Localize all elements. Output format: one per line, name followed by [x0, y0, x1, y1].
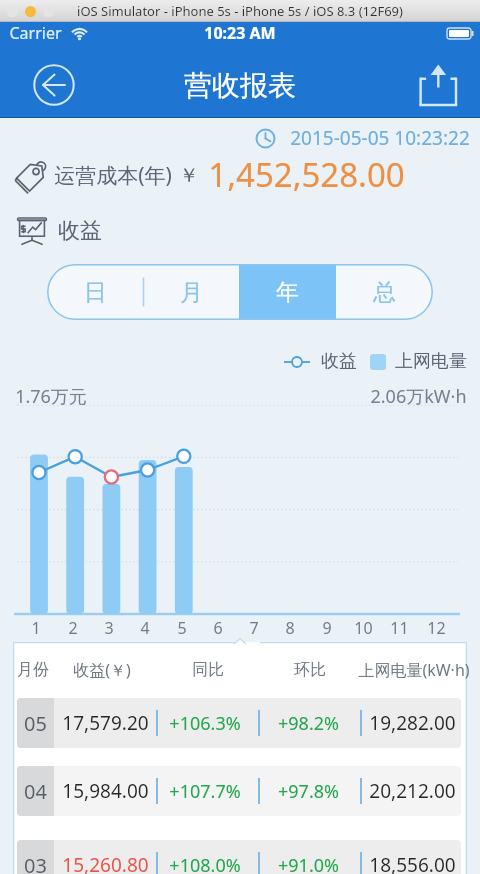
staticText: 3	[104, 617, 114, 637]
staticText: 10	[354, 617, 373, 637]
button[interactable]: Share	[414, 60, 462, 108]
staticText: 19,282.00	[369, 710, 456, 736]
staticText: 18,556.00	[369, 852, 456, 874]
staticText: 2	[68, 617, 78, 637]
staticText: 营收报表	[184, 68, 296, 103]
staticText: 日	[84, 278, 107, 307]
staticText: 15,260.80	[62, 852, 149, 874]
staticText: Carrier	[9, 22, 62, 44]
staticText: 环比	[294, 660, 326, 680]
staticText: 2.06万kW·h	[370, 384, 467, 409]
button[interactable]: 04	[17, 766, 461, 816]
staticText: +97.8%	[278, 779, 339, 804]
button[interactable]: 日	[47, 264, 143, 320]
staticText: 5	[177, 617, 187, 637]
staticText: 6	[213, 617, 223, 637]
staticText: 月	[180, 278, 203, 307]
staticText: 1.76万元	[15, 384, 87, 409]
staticText: 17,579.20	[62, 710, 149, 736]
staticText: 05	[24, 710, 47, 737]
staticText: 7	[249, 617, 259, 637]
staticText: +108.0%	[169, 853, 241, 874]
staticText: 运营成本(年)	[54, 161, 172, 190]
button[interactable]: Back	[30, 61, 78, 109]
staticText: 同比	[192, 660, 224, 680]
staticText: 上网电量(kW·h)	[358, 659, 470, 681]
button[interactable]: 05	[17, 698, 461, 748]
staticText: 04	[24, 778, 47, 805]
staticText: 收益	[58, 217, 102, 245]
staticText: 4	[140, 617, 150, 637]
staticText: 03	[24, 852, 47, 874]
staticText: iOS Simulator - iPhone 5s - iPhone 5s / …	[77, 2, 403, 20]
staticText: 月份	[17, 660, 49, 680]
staticText: 2015-05-05 10:23:22	[290, 125, 470, 151]
staticText: 1,452,528.00	[208, 152, 405, 197]
staticText: 11	[390, 617, 409, 637]
staticText: 总	[373, 278, 396, 307]
button[interactable]: 年	[239, 264, 336, 320]
staticText: 10:23 AM	[204, 22, 276, 44]
staticText: 1	[31, 617, 41, 637]
staticText: ￥	[179, 163, 199, 188]
staticText: 8	[285, 617, 295, 637]
staticText: 9	[322, 617, 332, 637]
button[interactable]: 总	[336, 264, 433, 320]
staticText: +107.7%	[169, 779, 241, 804]
staticText: 12	[427, 617, 446, 637]
staticText: +106.3%	[169, 711, 241, 736]
staticText: 收益(￥)	[73, 659, 131, 681]
staticText: 年	[276, 278, 299, 307]
staticText: +98.2%	[278, 711, 339, 736]
button[interactable]: 03	[17, 840, 461, 874]
button[interactable]: 月	[143, 264, 239, 320]
staticText: 15,984.00	[62, 778, 149, 804]
staticText: 20,212.00	[369, 778, 456, 804]
staticText: +91.0%	[278, 853, 339, 874]
staticText: 收益	[321, 350, 357, 373]
staticText: 上网电量	[395, 350, 467, 373]
